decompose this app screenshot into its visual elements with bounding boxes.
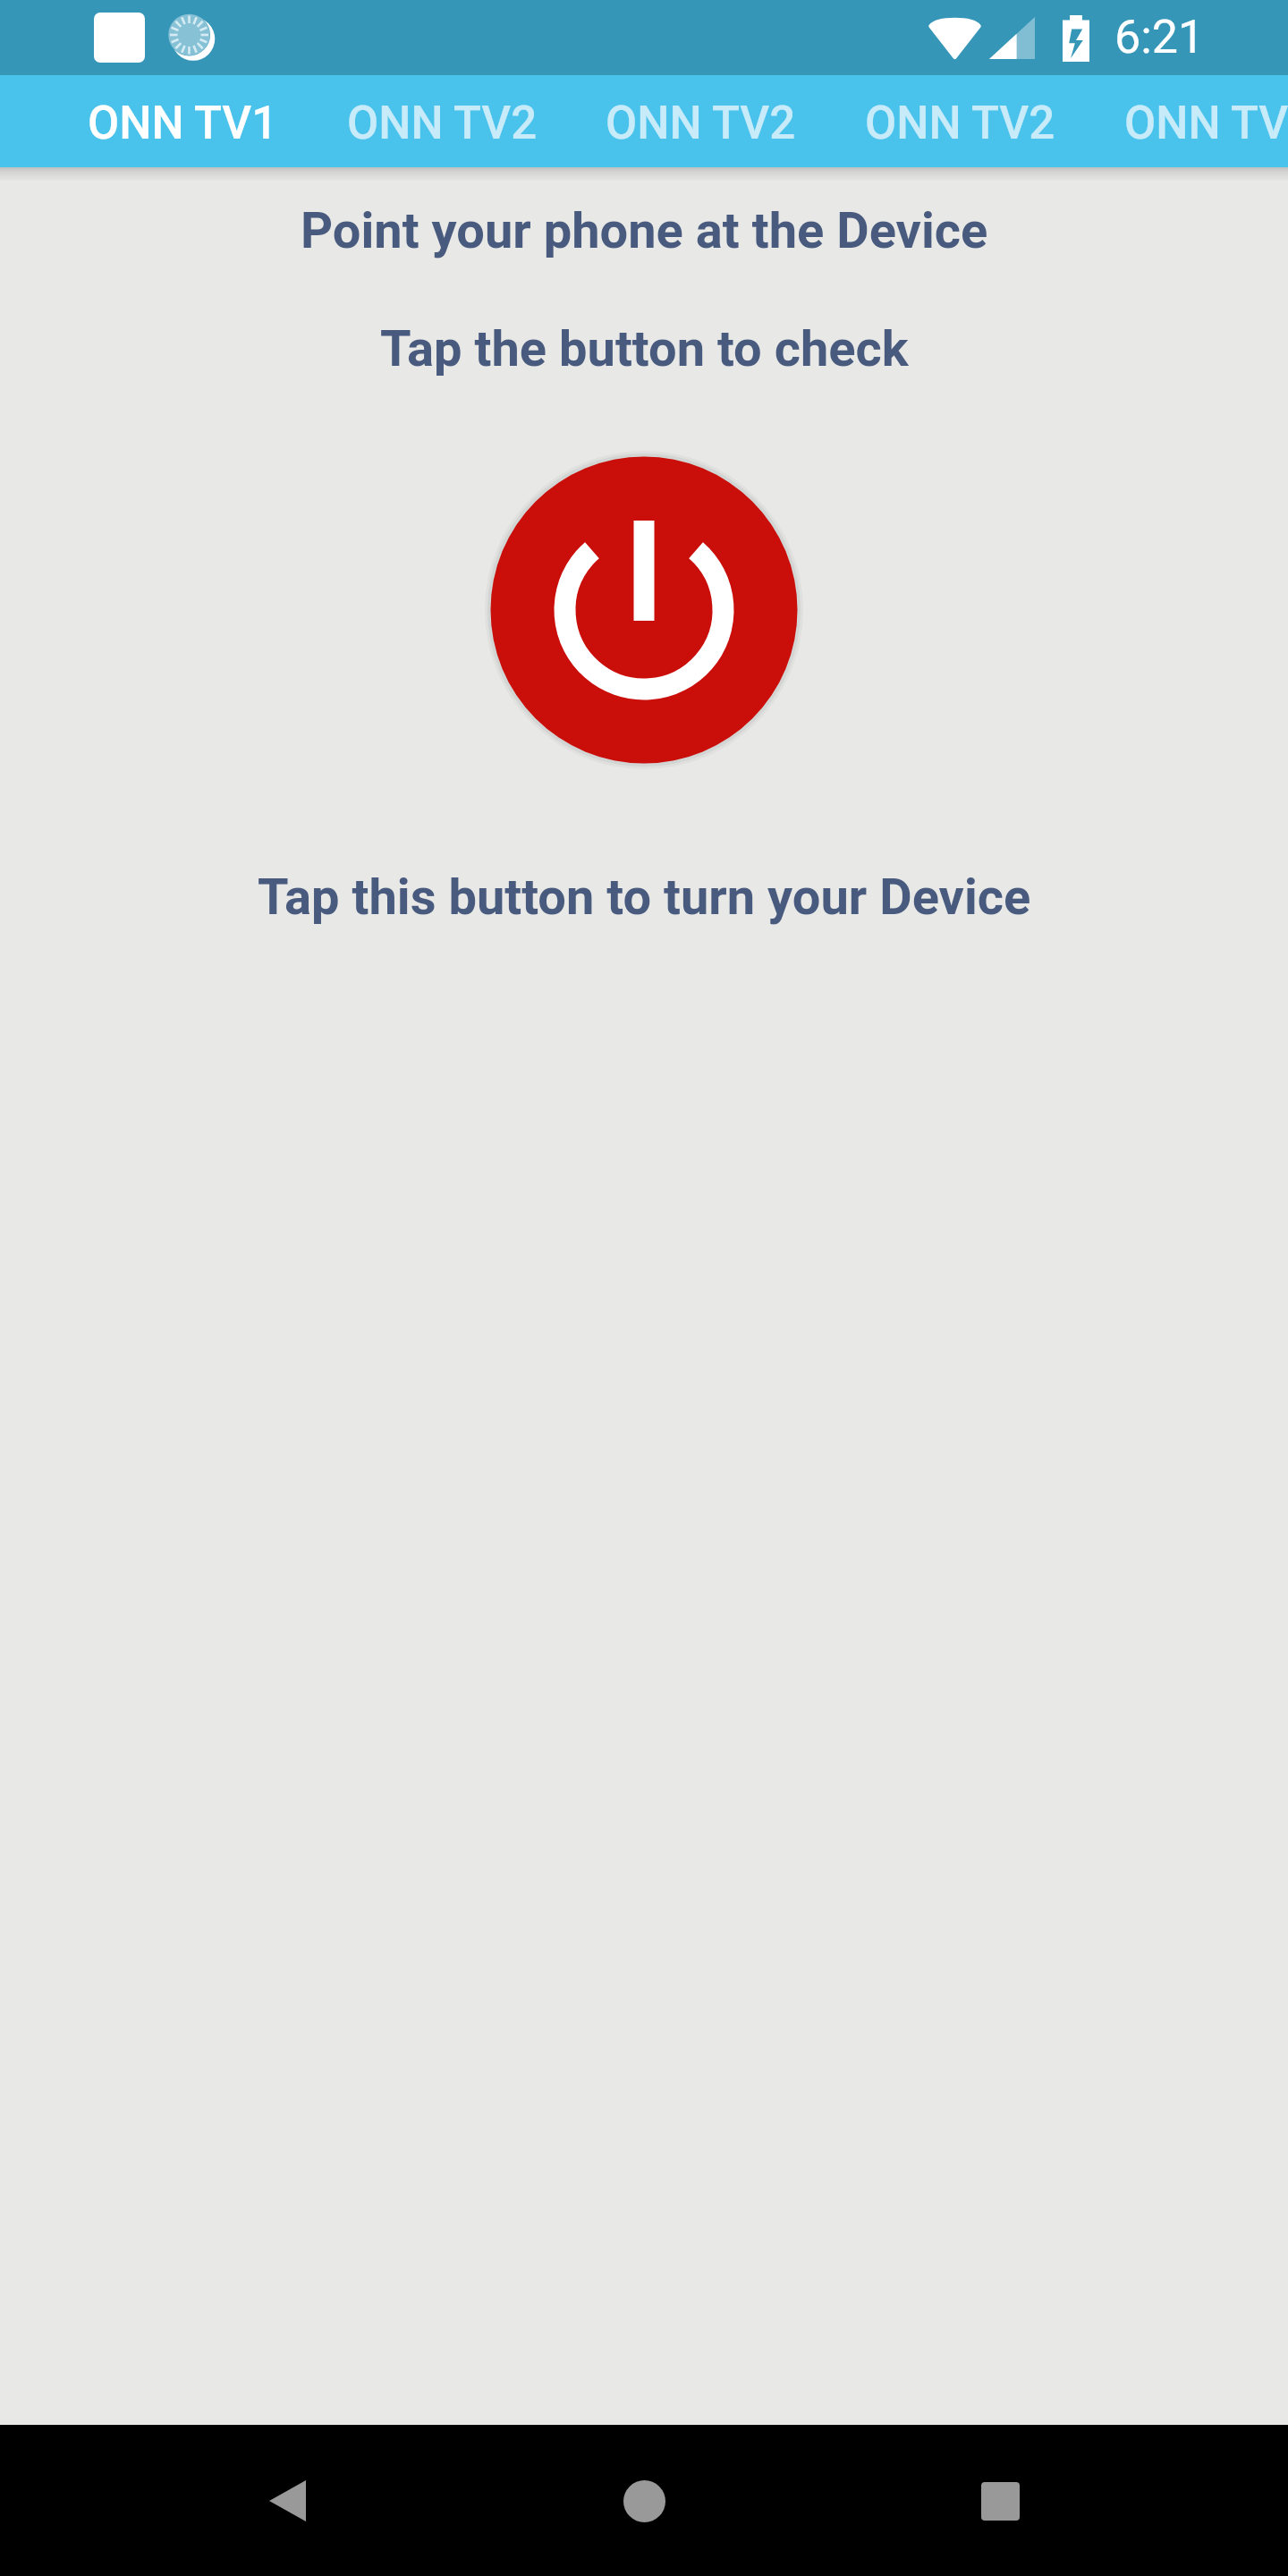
staticText: ONN TV1 [88,97,278,150]
button[interactable]: ONN TV2 [1089,75,1288,167]
button[interactable]: Back [233,2447,341,2555]
staticText: ONN TV2 [347,97,538,150]
button[interactable]: Power [486,452,802,768]
staticText: 6:21 [1114,10,1205,64]
staticText: Tap the button to check [380,319,909,378]
button[interactable]: ONN TV2 [313,75,571,167]
button[interactable]: Recents [946,2447,1054,2555]
staticText: ONN TV2 [606,97,796,150]
staticText: ONN TV2 [1124,97,1288,150]
staticText: Tap this button to turn your Device [258,868,1031,927]
staticText: ONN TV2 [865,97,1055,150]
staticText: Point your phone at the Device [301,201,988,260]
button[interactable]: Home [590,2447,698,2555]
button[interactable]: ONN TV1 [52,75,313,167]
button[interactable]: ONN TV2 [571,75,830,167]
button[interactable]: ONN TV2 [830,75,1089,167]
